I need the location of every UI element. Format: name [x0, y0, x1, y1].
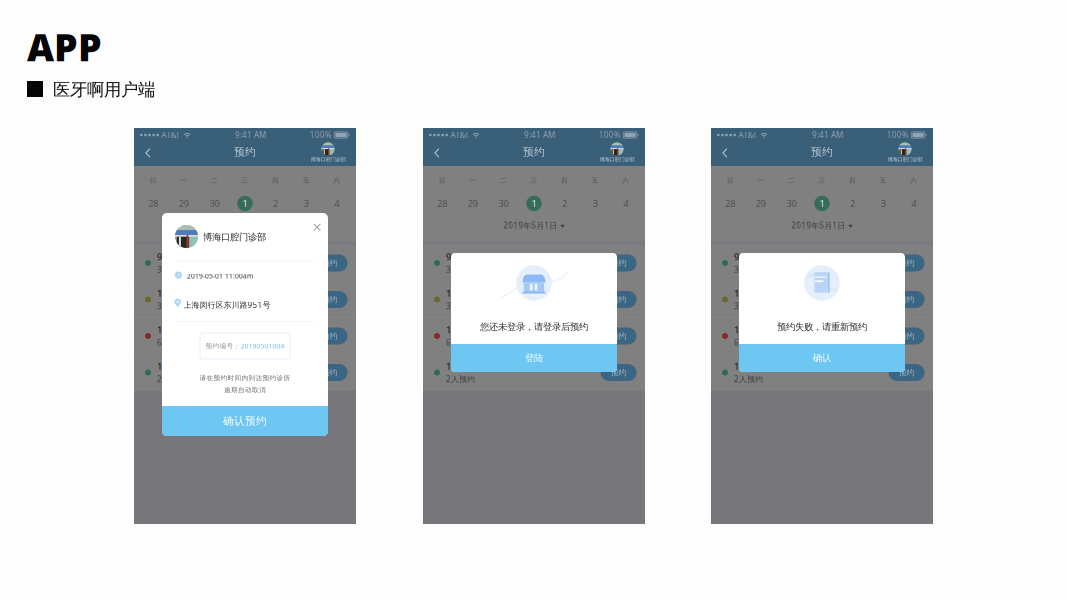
staticText: 预约	[898, 295, 914, 304]
staticText: 请在预约时间内到达预约诊所	[199, 374, 290, 382]
staticText: 3人预约	[734, 264, 763, 275]
staticText: 29	[756, 197, 766, 210]
button[interactable]: 确认预约	[162, 406, 328, 436]
staticText: 三	[530, 176, 537, 185]
staticText: 确认预约	[223, 414, 267, 427]
staticText: 六	[910, 176, 917, 185]
button[interactable]: 11:00	[134, 318, 356, 354]
button[interactable]: 14:00	[423, 354, 645, 390]
staticText: 28	[437, 197, 447, 210]
staticText: 确认	[813, 352, 831, 364]
button[interactable]: Clinic profile	[302, 141, 354, 165]
button[interactable]: 2019年5月1日	[711, 218, 933, 232]
staticText: 登陆	[525, 352, 543, 364]
staticText: 六	[622, 176, 629, 185]
staticText: 6人预约	[446, 337, 475, 348]
staticText: 四	[272, 176, 279, 185]
staticText: 9:41 AM	[524, 130, 555, 140]
button[interactable]: Back	[134, 142, 161, 164]
staticText: 4	[623, 197, 628, 210]
staticText: 20190501004	[240, 342, 284, 350]
staticText: 14:00	[734, 360, 757, 372]
staticText: 9:41 AM	[235, 130, 266, 140]
staticText: 三	[241, 176, 248, 185]
button[interactable]: 9:00	[423, 245, 645, 281]
staticText: 4	[334, 197, 339, 210]
staticText: 二	[788, 176, 795, 185]
staticText: 4	[911, 197, 916, 210]
staticText: 3	[881, 197, 886, 210]
button[interactable]: Clinic profile	[591, 141, 643, 165]
button[interactable]: 登陆	[451, 344, 617, 372]
staticText: 3	[593, 197, 598, 210]
staticText: 2019年5月1日	[503, 220, 557, 231]
staticText: 三	[818, 176, 825, 185]
staticText: 您还未登录，请登录后预约	[480, 321, 588, 333]
staticText: 9:41 AM	[812, 130, 843, 140]
staticText: 博海口腔门诊部	[887, 156, 922, 163]
staticText: 9:00	[446, 250, 464, 263]
staticText: 2	[562, 197, 567, 210]
staticText: AT&T	[738, 130, 756, 140]
staticText: 四	[849, 176, 856, 185]
staticText: 2	[850, 197, 855, 210]
button[interactable]: 9:00	[134, 245, 356, 281]
button[interactable]: 14:00	[134, 354, 356, 390]
staticText: 9:00	[734, 250, 752, 263]
staticText: 二	[211, 176, 218, 185]
staticText: 一	[757, 176, 764, 185]
staticText: 预约	[610, 258, 626, 268]
button[interactable]: 10:00	[134, 281, 356, 317]
button[interactable]: Back	[711, 142, 738, 164]
staticText: 五	[303, 176, 310, 185]
staticText: 预约	[321, 368, 337, 377]
button[interactable]: Close	[307, 217, 327, 237]
staticText: 预约	[321, 295, 337, 304]
staticText: 预约	[898, 331, 914, 341]
staticText: 14:00	[446, 360, 469, 372]
button[interactable]: 14:00	[711, 354, 933, 390]
staticText: AT&T	[161, 130, 179, 140]
staticText: 3人预约	[734, 301, 763, 311]
staticText: 预约	[610, 331, 626, 341]
staticText: 预约	[234, 145, 256, 158]
staticText: 11:00	[446, 323, 469, 336]
staticText: 29	[179, 197, 189, 210]
staticText: 1	[531, 197, 536, 210]
staticText: 预约失败，请重新预约	[777, 321, 867, 333]
staticText: 2019年5月1日	[791, 220, 845, 231]
staticText: 预约	[898, 368, 914, 377]
staticText: 9:00	[157, 250, 175, 263]
staticText: 10:00	[734, 287, 757, 299]
staticText: 1	[242, 197, 247, 210]
staticText: 六	[333, 176, 340, 185]
staticText: 预约	[811, 145, 833, 158]
button[interactable]: 9:00	[711, 245, 933, 281]
staticText: 预约编号：	[205, 342, 240, 350]
staticText: 日	[727, 176, 734, 185]
button[interactable]: 2019年5月1日	[423, 218, 645, 232]
staticText: 3	[304, 197, 309, 210]
staticText: 2	[273, 197, 278, 210]
staticText: 2人预约	[157, 374, 186, 384]
staticText: 日	[150, 176, 157, 185]
staticText: 30	[209, 197, 219, 210]
staticText: 100%	[310, 130, 332, 140]
staticText: 预约	[321, 258, 337, 268]
staticText: 四	[561, 176, 568, 185]
button[interactable]: 10:00	[711, 281, 933, 317]
staticText: 11:00	[157, 323, 180, 336]
button[interactable]: 11:00	[711, 318, 933, 354]
button[interactable]: 确认	[739, 344, 905, 372]
button[interactable]: 11:00	[423, 318, 645, 354]
staticText: 3人预约	[157, 264, 186, 275]
staticText: 28	[725, 197, 735, 210]
staticText: 6人预约	[157, 337, 186, 348]
staticText: 上海闵行区东川路951号	[183, 299, 270, 310]
button[interactable]: 10:00	[423, 281, 645, 317]
button[interactable]: Clinic profile	[879, 141, 931, 165]
staticText: APP	[27, 22, 102, 72]
button[interactable]: Back	[423, 142, 450, 164]
staticText: 博海口腔门诊部	[599, 156, 634, 163]
staticText: 2019-05-01 11:00am	[187, 271, 253, 280]
